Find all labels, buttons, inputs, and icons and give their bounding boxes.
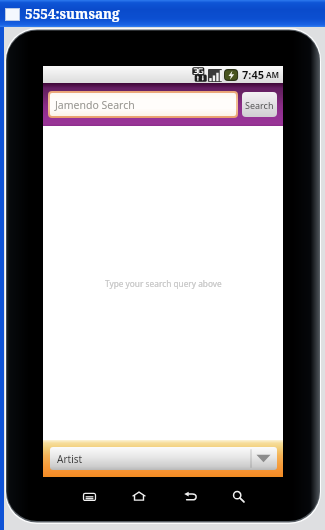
staticText: Artist bbox=[57, 452, 250, 466]
button[interactable]: Home bbox=[127, 484, 151, 508]
staticText: Search bbox=[245, 99, 274, 111]
staticText: 5554:sumsang bbox=[25, 5, 120, 23]
button[interactable]: Back bbox=[178, 484, 202, 508]
staticText: Type your search query above bbox=[105, 278, 222, 289]
button[interactable]: Menu bbox=[77, 484, 101, 508]
button[interactable]: Search bbox=[226, 484, 250, 508]
button[interactable]: Search bbox=[242, 92, 277, 117]
button[interactable]: Jamendo Search bbox=[48, 91, 238, 118]
staticText: Jamendo Search bbox=[55, 98, 135, 112]
staticText: AM bbox=[266, 69, 280, 80]
staticText: 7:45 bbox=[242, 67, 264, 82]
button[interactable]: Artist bbox=[50, 447, 277, 470]
